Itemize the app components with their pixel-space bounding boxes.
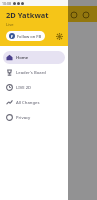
button[interactable] xyxy=(4,176,93,193)
button[interactable] xyxy=(4,108,93,125)
button[interactable] xyxy=(4,91,93,108)
button[interactable]: Digit xyxy=(4,38,17,51)
button[interactable] xyxy=(4,193,93,200)
staticText: Home xyxy=(16,55,29,61)
button[interactable] xyxy=(4,125,93,142)
staticText: 10:08 xyxy=(2,1,11,6)
button[interactable]: Leader's Board xyxy=(3,66,65,79)
button[interactable] xyxy=(4,159,93,176)
staticText: All Changes xyxy=(16,100,40,106)
button[interactable] xyxy=(4,57,93,74)
staticText: Leader's Board xyxy=(16,70,46,76)
button[interactable]: Settings xyxy=(54,31,64,41)
button[interactable]: Action xyxy=(81,10,90,19)
button[interactable]: f xyxy=(6,31,45,41)
staticText: f xyxy=(11,34,13,39)
button[interactable]: Digit xyxy=(52,38,65,51)
staticText: 2D Yatkwat xyxy=(6,10,49,20)
button[interactable]: All Changes xyxy=(3,96,65,109)
button[interactable] xyxy=(4,74,93,91)
button[interactable]: Action xyxy=(69,10,78,19)
button[interactable] xyxy=(4,142,93,159)
button[interactable]: Digit xyxy=(20,38,33,51)
staticText: LIVE 2D xyxy=(16,85,32,91)
staticText: Live xyxy=(6,22,14,27)
button[interactable]: Privacy xyxy=(3,111,65,124)
button[interactable]: LIVE 2D xyxy=(3,81,65,94)
staticText: Follow on FB xyxy=(17,34,42,39)
button[interactable]: Digit xyxy=(36,38,49,51)
staticText: Privacy xyxy=(16,115,31,121)
button[interactable]: Home xyxy=(3,51,65,64)
button[interactable] xyxy=(6,26,48,34)
